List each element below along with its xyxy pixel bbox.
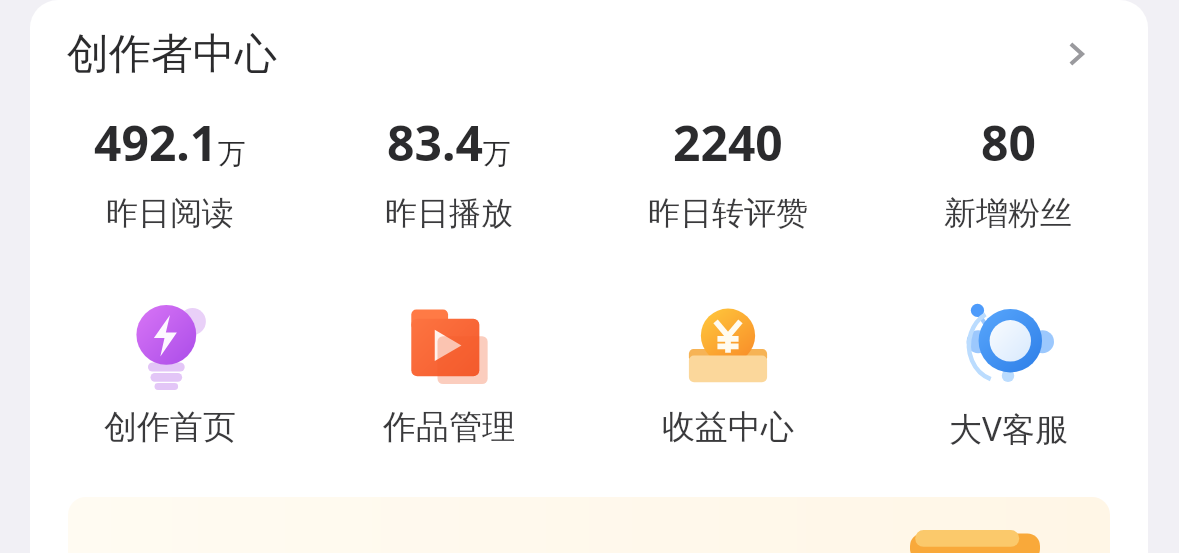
staticText: 83.4 [387,110,483,175]
button[interactable]: 492.1 [30,110,309,260]
staticText: 昨日播放 [385,193,513,233]
button[interactable]: 收益中心 [588,298,868,468]
staticText: 万 [218,136,246,171]
button[interactable]: 2240 [588,110,868,260]
staticText: 新增粉丝 [944,193,1072,233]
staticText: 作品管理 [383,406,515,448]
staticText: 80 [981,110,1036,175]
button[interactable]: 作品管理 [309,298,588,468]
button[interactable]: 80 [868,110,1148,260]
staticText: 492.1 [94,110,218,175]
button[interactable]: 大V客服 [868,298,1148,468]
staticText: 大V客服 [949,406,1068,451]
button[interactable]: 创作首页 [30,298,309,468]
button[interactable] [68,497,1110,553]
other: 进入创作者中心 [1054,32,1098,76]
staticText: 万 [483,136,511,171]
staticText: 昨日阅读 [106,193,234,233]
staticText: 创作首页 [104,406,236,448]
button[interactable]: 创作者中心 [30,0,1148,110]
staticText: 2240 [673,110,783,175]
button[interactable]: 83.4 [309,110,588,260]
staticText: 昨日转评赞 [648,193,808,233]
staticText: 创作者中心 [67,28,277,81]
staticText: 收益中心 [662,406,794,448]
